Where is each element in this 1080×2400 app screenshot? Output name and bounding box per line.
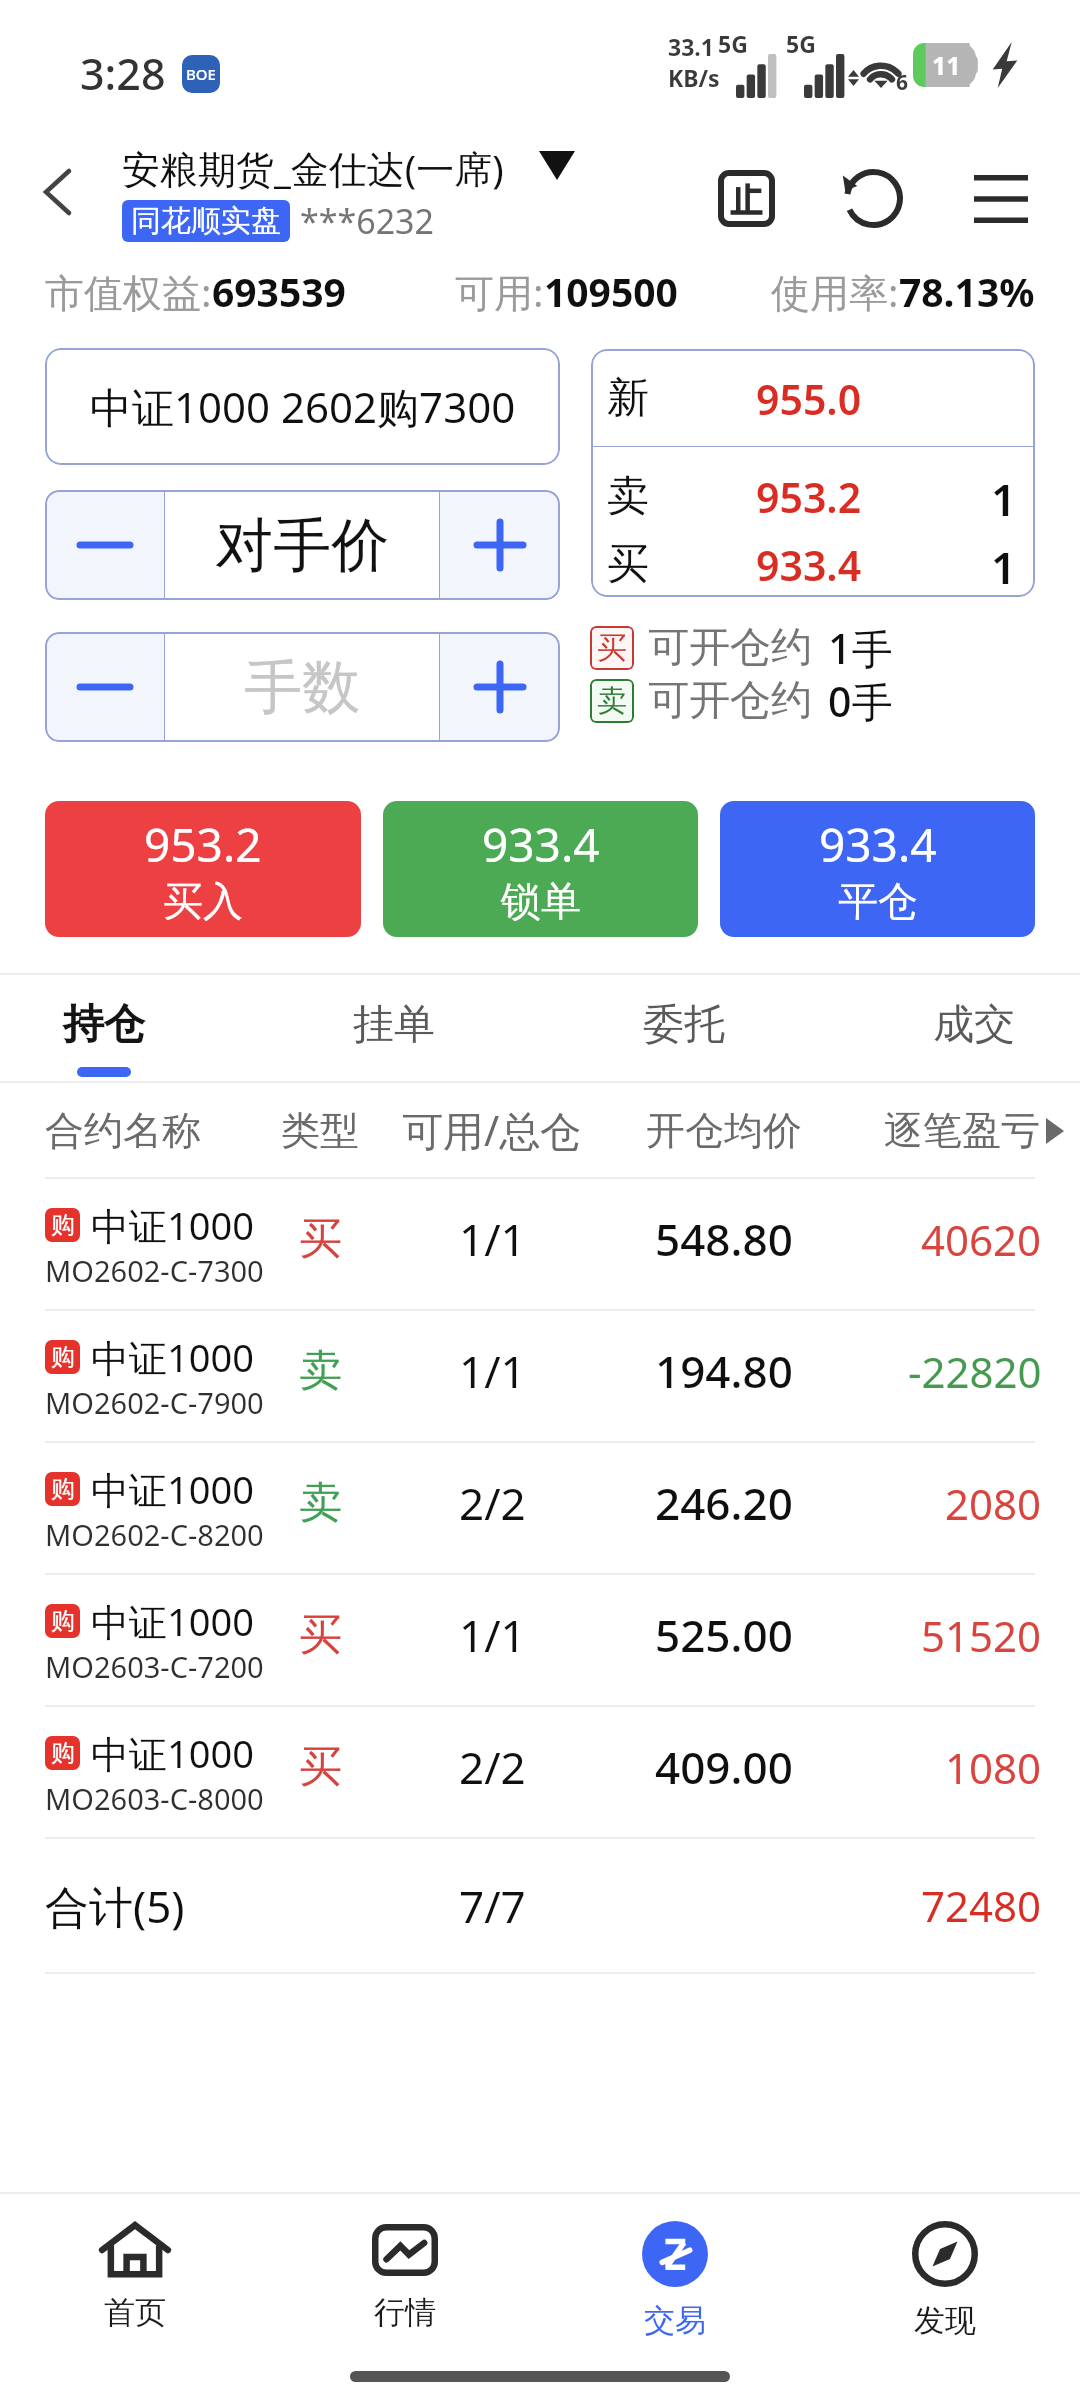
button[interactable]: 购 (0, 1311, 1080, 1441)
staticText: 0手 (828, 673, 893, 729)
button[interactable]: 933.4 (720, 801, 1035, 937)
staticText: 可用: (455, 265, 544, 318)
button[interactable]: 中证1000 2602购7300 (45, 348, 560, 465)
staticText: 买 (607, 538, 649, 591)
staticText: -22820 (908, 1343, 1042, 1400)
staticText: 卖 (299, 1344, 342, 1398)
staticText: 首页 (104, 2293, 166, 2332)
button[interactable]: Decrease (45, 490, 164, 600)
staticText: MO2602-C-8200 (45, 1515, 264, 1554)
staticText: 类型 (281, 1106, 359, 1155)
staticText: 行情 (374, 2293, 436, 2332)
staticText: 可用/总仓 (402, 1102, 582, 1158)
staticText: 5G (718, 28, 748, 59)
staticText: 955.0 (756, 371, 862, 425)
staticText: 78.13% (899, 265, 1035, 318)
staticText: 194.80 (655, 1341, 793, 1401)
staticText: MO2602-C-7300 (45, 1251, 264, 1290)
button[interactable]: Menu (952, 150, 1049, 247)
staticText: 1080 (945, 1739, 1042, 1796)
staticText: 933.4 (819, 813, 937, 876)
staticText: 933.4 (756, 537, 862, 591)
staticText: 中证1000 2602购7300 (90, 378, 516, 435)
button[interactable]: Refresh (825, 150, 922, 247)
button[interactable]: 行情 (270, 2194, 540, 2339)
staticText: 548.80 (655, 1209, 793, 1269)
staticText: MO2602-C-7900 (45, 1383, 264, 1422)
button[interactable]: 发现 (810, 2194, 1080, 2339)
staticText: 合计(5) (45, 1876, 185, 1936)
staticText: 1 (991, 537, 1017, 591)
staticText: 购 (51, 1606, 75, 1636)
button[interactable]: 购 (0, 1707, 1080, 1837)
staticText: 买 (597, 629, 627, 667)
staticText: 5G (786, 28, 816, 59)
button[interactable]: 持仓 (0, 975, 249, 1081)
staticText: 1/1 (459, 1209, 526, 1269)
staticText: 693539 (212, 265, 346, 318)
staticText: 中证1000 (91, 1331, 254, 1383)
button[interactable]: 交易 (540, 2194, 810, 2339)
staticText: 新 (607, 372, 649, 425)
button[interactable]: 首页 (0, 2194, 270, 2339)
staticText: 246.20 (655, 1473, 793, 1533)
staticText: 买入 (163, 876, 243, 926)
button[interactable]: Increase (440, 632, 560, 742)
staticText: 中证1000 (91, 1463, 254, 1515)
button[interactable]: 933.4 (383, 801, 698, 937)
staticText: 市值权益: (45, 265, 212, 318)
button[interactable]: 挂单 (249, 975, 539, 1081)
staticText: 手数 (244, 651, 360, 724)
staticText: 1/1 (459, 1605, 526, 1665)
staticText: 买 (299, 1608, 342, 1662)
staticText: 51520 (921, 1607, 1042, 1664)
button[interactable]: Stop loss (698, 150, 795, 247)
staticText: 中证1000 (91, 1199, 254, 1251)
staticText: 卖 (299, 1476, 342, 1530)
staticText: 购 (51, 1210, 75, 1240)
staticText: 2/2 (459, 1473, 526, 1533)
staticText: 3:28 (80, 44, 166, 103)
button[interactable]: 对手价 (165, 490, 439, 600)
staticText: MO2603-C-8000 (45, 1779, 264, 1818)
staticText: 同花顺实盘 (131, 202, 281, 240)
staticText: 40620 (921, 1211, 1042, 1268)
button[interactable]: Back (13, 148, 101, 236)
staticText: 挂单 (353, 999, 435, 1051)
button[interactable]: 953.2 (45, 801, 361, 937)
staticText: 2080 (945, 1475, 1042, 1532)
staticText: 逐笔盈亏 (884, 1106, 1040, 1155)
staticText: 成交 (933, 999, 1015, 1051)
button[interactable]: 成交 (829, 975, 1080, 1081)
staticText: 卖 (607, 470, 649, 523)
staticText: 可开仓约 (648, 622, 812, 674)
button[interactable]: Decrease (45, 632, 164, 742)
staticText: 买 (299, 1212, 342, 1266)
staticText: 安粮期货_金仕达(一席) (122, 142, 504, 194)
button[interactable]: 购 (0, 1575, 1080, 1705)
staticText: 开仓均价 (646, 1106, 802, 1155)
staticText: 525.00 (655, 1605, 793, 1665)
staticText: 109500 (544, 265, 678, 318)
staticText: 购 (51, 1474, 75, 1504)
staticText: 使用率: (771, 265, 899, 318)
button[interactable]: 购 (0, 1443, 1080, 1573)
staticText: BOE (186, 64, 216, 84)
staticText: 中证1000 (91, 1595, 254, 1647)
staticText: 交易 (644, 2301, 706, 2339)
button[interactable]: 手数 (165, 632, 439, 742)
staticText: 可开仓约 (648, 675, 812, 727)
staticText: 对手价 (215, 509, 389, 582)
button[interactable]: 购 (0, 1179, 1080, 1309)
staticText: 953.2 (144, 813, 262, 876)
button[interactable]: 委托 (539, 975, 829, 1081)
staticText: 1/1 (459, 1341, 526, 1401)
button[interactable]: Increase (440, 490, 560, 600)
staticText: 72480 (921, 1877, 1042, 1934)
staticText: KB/s (668, 62, 720, 93)
staticText: 2/2 (459, 1737, 526, 1797)
staticText: 买 (299, 1740, 342, 1794)
staticText: 合约名称 (45, 1106, 201, 1155)
staticText: 409.00 (655, 1737, 793, 1797)
staticText: 953.2 (756, 469, 862, 523)
